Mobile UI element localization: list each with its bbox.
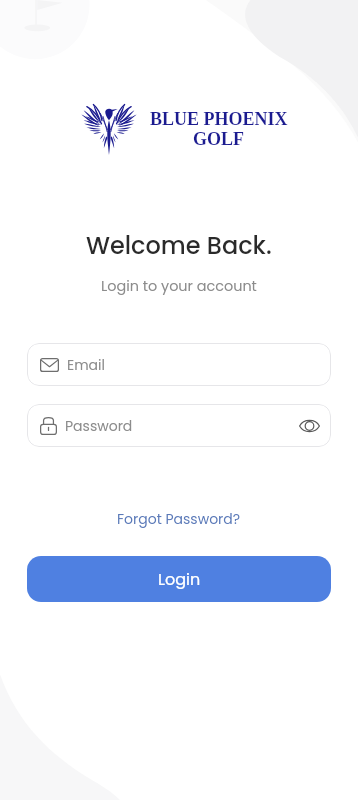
button[interactable]: Show password	[297, 414, 321, 438]
button[interactable]: Forgot Password?	[113, 507, 245, 531]
button[interactable]: Email	[27, 343, 331, 386]
button[interactable]: Password	[27, 404, 331, 447]
staticText: GOLF	[193, 129, 245, 149]
staticText: BLUE PHOENIX	[150, 109, 288, 129]
staticText: Login to your account	[101, 276, 257, 296]
staticText: Password	[65, 416, 133, 436]
staticText: Welcome Back.	[86, 229, 272, 263]
staticText: Forgot Password?	[117, 509, 241, 529]
staticText: Email	[67, 355, 105, 375]
button[interactable]: Login	[27, 556, 331, 602]
staticText: Login	[158, 568, 201, 590]
